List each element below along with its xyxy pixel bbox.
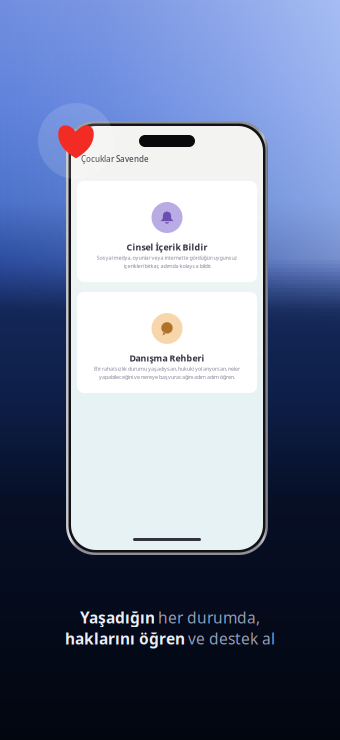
staticText: yapabileceğini ve nereye başvuracağını a… <box>99 373 235 381</box>
staticText: Çocuklar Savende <box>81 154 149 164</box>
staticText: Danışma Rehberi <box>129 352 204 364</box>
staticText: Bir rahatsızlık durumu yaşadıysan, hukuk… <box>94 365 240 372</box>
button[interactable]: Danışma Rehberi <box>77 292 257 393</box>
staticText: Sosyal medya, oyunlar veya internette gö… <box>96 254 237 261</box>
staticText: Cinsel İçerik Bildir <box>126 241 207 253</box>
staticText: Yaşadığın <box>80 607 155 628</box>
button[interactable]: Cinsel İçerik Bildir <box>77 181 257 282</box>
staticText: ve destek al <box>188 628 275 649</box>
staticText: her durumda, <box>158 607 260 628</box>
staticText: haklarını öğren <box>65 628 185 649</box>
staticText: içerikleri birkaç adımda kolayca bildir. <box>123 262 210 270</box>
